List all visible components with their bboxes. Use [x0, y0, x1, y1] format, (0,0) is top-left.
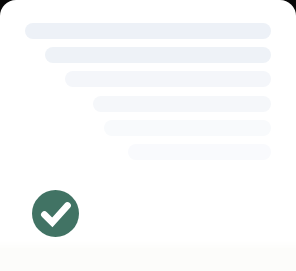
button[interactable]: Completed — [32, 190, 79, 237]
